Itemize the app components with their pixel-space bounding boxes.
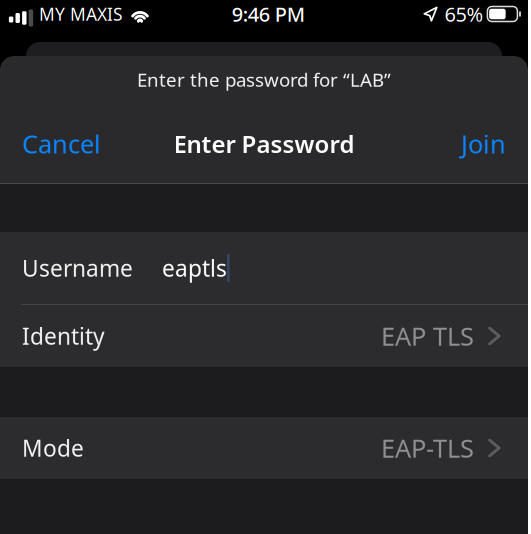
button[interactable]: Username [0, 232, 528, 304]
staticText: eaptls [162, 253, 227, 283]
staticText: MY MAXIS [39, 2, 123, 25]
button[interactable]: Cancel [22, 121, 101, 167]
staticText: 9:46 PM [232, 1, 305, 27]
staticText: Join [461, 127, 506, 161]
staticText: Identity [22, 321, 105, 351]
staticText: EAP-TLS [381, 431, 474, 465]
staticText: Mode [22, 433, 84, 463]
button[interactable]: Mode [0, 417, 528, 479]
staticText: EAP TLS [381, 319, 474, 353]
button[interactable]: Identity [0, 305, 528, 367]
staticText: 65% [444, 1, 483, 27]
staticText: Enter the password for “LAB” [137, 67, 391, 92]
staticText: Cancel [22, 127, 101, 161]
button[interactable]: Join [461, 121, 506, 167]
staticText: Enter Password [173, 128, 354, 160]
staticText: Username [22, 253, 133, 283]
